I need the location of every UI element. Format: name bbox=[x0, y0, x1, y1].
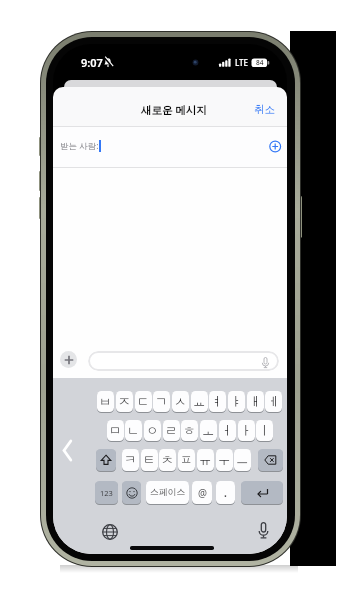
staticText: 9:07 bbox=[81, 55, 103, 70]
button[interactable]: ㅑ bbox=[228, 391, 245, 412]
staticText: 스페이스 bbox=[150, 487, 186, 498]
button[interactable]: ㅔ bbox=[265, 391, 282, 412]
staticText: ㄱ bbox=[155, 394, 168, 410]
button[interactable]: ㅗ bbox=[200, 420, 217, 441]
staticText: ㅏ bbox=[240, 423, 253, 439]
button[interactable]: ㄹ bbox=[163, 420, 180, 441]
button[interactable] bbox=[60, 351, 77, 368]
button[interactable]: ㅠ bbox=[197, 449, 214, 471]
button[interactable]: ㅛ bbox=[191, 391, 208, 412]
button[interactable]: ㅋ bbox=[122, 449, 139, 471]
staticText: ㅐ bbox=[249, 394, 262, 410]
button[interactable] bbox=[258, 522, 269, 542]
staticText: ㅣ bbox=[258, 423, 271, 439]
button[interactable]: ㅏ bbox=[238, 420, 255, 441]
staticText: ㅠ bbox=[199, 452, 212, 468]
staticText: ㅁ bbox=[109, 423, 122, 439]
button[interactable]: ㅜ bbox=[216, 449, 233, 471]
button[interactable] bbox=[102, 524, 118, 540]
staticText: LTE bbox=[235, 57, 249, 68]
button[interactable]: ㅎ bbox=[181, 420, 198, 441]
button[interactable]: . bbox=[216, 481, 235, 504]
staticText: 취소 bbox=[254, 103, 275, 116]
staticText: ㅈ bbox=[118, 394, 131, 410]
staticText: ㅍ bbox=[180, 452, 193, 468]
staticText: ㅡ bbox=[236, 452, 249, 468]
staticText: ㅓ bbox=[221, 423, 234, 439]
button[interactable]: ㅓ bbox=[219, 420, 236, 441]
staticText: ㅂ bbox=[99, 394, 112, 410]
button[interactable]: ㅊ bbox=[159, 449, 176, 471]
staticText: ㄴ bbox=[127, 423, 140, 439]
button[interactable] bbox=[53, 127, 287, 167]
button[interactable] bbox=[96, 449, 116, 471]
button[interactable]: ㅕ bbox=[209, 391, 226, 412]
button[interactable]: ㄱ bbox=[153, 391, 170, 412]
staticText: . bbox=[224, 486, 227, 500]
button[interactable] bbox=[241, 481, 283, 504]
staticText: ㅗ bbox=[202, 423, 215, 439]
button[interactable] bbox=[122, 481, 141, 504]
button[interactable]: 스페이스 bbox=[146, 481, 189, 504]
staticText: ㅑ bbox=[230, 394, 243, 410]
button[interactable]: ㅂ bbox=[97, 391, 114, 412]
staticText: ㅌ bbox=[143, 452, 156, 468]
staticText: ㅋ bbox=[124, 452, 137, 468]
button[interactable]: ㄷ bbox=[135, 391, 152, 412]
button[interactable]: ㅐ bbox=[247, 391, 264, 412]
button[interactable]: 123 bbox=[95, 481, 118, 504]
button[interactable]: ㅅ bbox=[172, 391, 189, 412]
button[interactable]: ㅌ bbox=[141, 449, 158, 471]
staticText: ㄹ bbox=[165, 423, 178, 439]
staticText: ㅊ bbox=[161, 452, 174, 468]
staticText: ㅕ bbox=[211, 394, 224, 410]
staticText: ㄷ bbox=[137, 394, 150, 410]
button[interactable]: ㄴ bbox=[125, 420, 142, 441]
button[interactable]: ㅡ bbox=[234, 449, 251, 471]
staticText: @ bbox=[198, 486, 207, 500]
staticText: ㅅ bbox=[174, 394, 187, 410]
button[interactable]: ㅁ bbox=[107, 420, 124, 441]
staticText: 84 bbox=[256, 58, 264, 67]
button[interactable]: @ bbox=[192, 481, 212, 504]
button[interactable] bbox=[60, 439, 74, 462]
staticText: ㅜ bbox=[218, 452, 231, 468]
staticText: 123 bbox=[100, 488, 113, 498]
staticText: ㅎ bbox=[183, 423, 196, 439]
staticText: 받는 사람: bbox=[60, 140, 99, 152]
button[interactable] bbox=[88, 351, 279, 371]
button[interactable]: ㅇ bbox=[144, 420, 161, 441]
button[interactable] bbox=[269, 140, 282, 153]
staticText: ㅛ bbox=[193, 394, 206, 410]
button[interactable]: 취소 bbox=[243, 102, 275, 117]
staticText: 새로운 메시지 bbox=[141, 103, 207, 117]
button[interactable]: ㅣ bbox=[256, 420, 273, 441]
button[interactable]: ㅍ bbox=[178, 449, 195, 471]
staticText: ㅇ bbox=[146, 423, 159, 439]
button[interactable]: ㅈ bbox=[116, 391, 133, 412]
button[interactable] bbox=[258, 449, 283, 471]
staticText: ㅔ bbox=[267, 394, 280, 410]
